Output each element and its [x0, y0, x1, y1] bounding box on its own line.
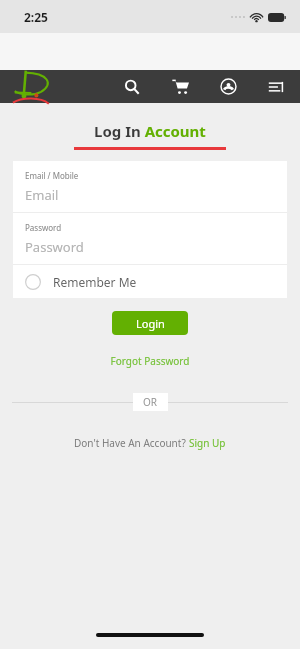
- staticText: Email / Mobile: [25, 170, 79, 181]
- button[interactable]: Sign Up: [189, 436, 226, 450]
- button[interactable]: Login: [112, 311, 188, 335]
- staticText: Password: [25, 222, 62, 233]
- staticText: Login: [136, 316, 165, 331]
- staticText: 2:25: [24, 9, 48, 25]
- staticText: Remember Me: [53, 274, 137, 290]
- staticText: Log In Account: [94, 121, 206, 141]
- staticText: OR: [143, 395, 158, 409]
- button[interactable]: Email / Mobile: [13, 161, 287, 212]
- button[interactable]: Forgot Password: [0, 351, 300, 371]
- button[interactable]: Search: [108, 70, 156, 103]
- staticText: Email: [25, 186, 59, 204]
- staticText: Password: [25, 238, 84, 256]
- staticText: Don't Have An Account?: [74, 436, 189, 450]
- button[interactable]: Account: [204, 70, 252, 103]
- button[interactable]: Remember Me: [13, 265, 287, 298]
- button[interactable]: Menu: [252, 70, 300, 103]
- button[interactable]: Password: [13, 213, 287, 264]
- button[interactable]: Cart: [156, 70, 204, 103]
